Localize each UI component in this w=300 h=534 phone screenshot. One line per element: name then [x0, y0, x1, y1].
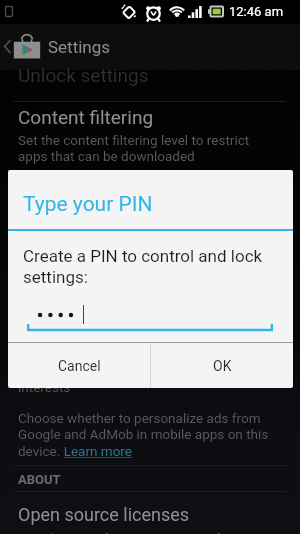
staticText: OK: [213, 358, 232, 374]
button[interactable]: Cancel: [8, 343, 150, 388]
staticText: 12:46 am: [229, 4, 284, 19]
staticText: Set the content filtering level to restr…: [18, 132, 254, 165]
button[interactable]: OK: [151, 343, 293, 388]
staticText: ABOUT: [18, 472, 61, 487]
button[interactable]: Navigate up: [0, 24, 300, 70]
button[interactable]: Choose whether to personalize ads from G…: [18, 410, 276, 460]
staticText: Settings: [48, 37, 111, 57]
staticText: interests: [18, 379, 71, 395]
staticText: Cancel: [58, 358, 101, 374]
staticText: View licenses for open source software: [18, 530, 254, 534]
staticText: Type your PIN: [23, 192, 153, 217]
button[interactable]: Open source licenses: [0, 492, 300, 534]
staticText: Create a PIN to control and lock setting…: [23, 246, 286, 288]
staticText: Open source licenses: [18, 504, 190, 525]
staticText: Unlock settings: [18, 64, 149, 86]
button[interactable]: Content filtering: [0, 102, 300, 168]
button[interactable]: Unlock settings: [0, 62, 300, 101]
staticText: Content filtering: [18, 106, 154, 128]
